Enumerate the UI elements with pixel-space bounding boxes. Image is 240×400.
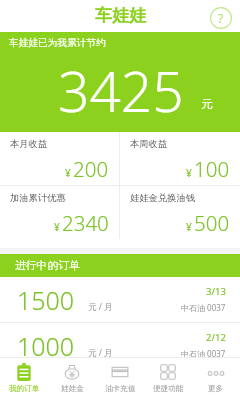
staticText: 元 / 月 xyxy=(88,347,113,359)
button[interactable]: 更多 xyxy=(192,358,240,400)
staticText: 油卡充值 xyxy=(105,384,136,394)
staticText: 200 xyxy=(73,155,109,183)
staticText: 本月收益 xyxy=(10,138,48,150)
staticText: 娃娃金 xyxy=(61,384,84,394)
staticText: 2340 xyxy=(62,209,109,237)
staticText: 中石油 0037 xyxy=(181,302,226,313)
button[interactable]: 便捷功能 xyxy=(144,358,192,400)
staticText: 更多 xyxy=(208,384,224,394)
button[interactable]: 本月收益 xyxy=(0,132,119,185)
staticText: 中石油 0037 xyxy=(181,348,226,359)
button[interactable]: 1000 xyxy=(0,323,240,368)
button[interactable]: 娃娃金兑换油钱 xyxy=(120,186,240,239)
staticText: 1000 xyxy=(17,329,75,363)
staticText: 我的订单 xyxy=(9,384,40,394)
staticText: 2/12 xyxy=(206,331,226,344)
button[interactable]: 我的订单 xyxy=(0,358,48,400)
button[interactable]: 娃娃金 xyxy=(48,358,96,400)
staticText: 3/13 xyxy=(206,285,226,298)
staticText: 车娃娃 xyxy=(95,5,146,26)
staticText: 3425 xyxy=(58,53,184,128)
staticText: 车娃娃已为我累计节约 xyxy=(9,37,106,49)
staticText: 元 xyxy=(201,97,213,111)
staticText: 本周收益 xyxy=(130,138,168,150)
staticText: ? xyxy=(218,10,224,26)
button[interactable]: Help xyxy=(210,7,232,29)
staticText: ¥ xyxy=(186,220,192,234)
staticText: 便捷功能 xyxy=(153,384,184,394)
button[interactable]: 本周收益 xyxy=(120,132,240,185)
staticText: 500 xyxy=(194,209,230,237)
staticText: ¥ xyxy=(54,220,60,234)
staticText: 100 xyxy=(194,155,230,183)
button[interactable]: 进行中的订单 xyxy=(0,254,240,277)
button[interactable]: 油卡充值 xyxy=(96,358,144,400)
staticText: ¥ xyxy=(186,166,192,180)
staticText: 娃娃金兑换油钱 xyxy=(130,192,196,204)
staticText: ¥ xyxy=(65,166,71,180)
staticText: 元 / 月 xyxy=(88,301,113,313)
staticText: 进行中的订单 xyxy=(15,259,80,273)
button[interactable]: 1500 xyxy=(0,277,240,322)
staticText: 1500 xyxy=(17,283,75,317)
button[interactable]: 加油累计优惠 xyxy=(0,186,119,239)
staticText: 加油累计优惠 xyxy=(10,192,66,204)
